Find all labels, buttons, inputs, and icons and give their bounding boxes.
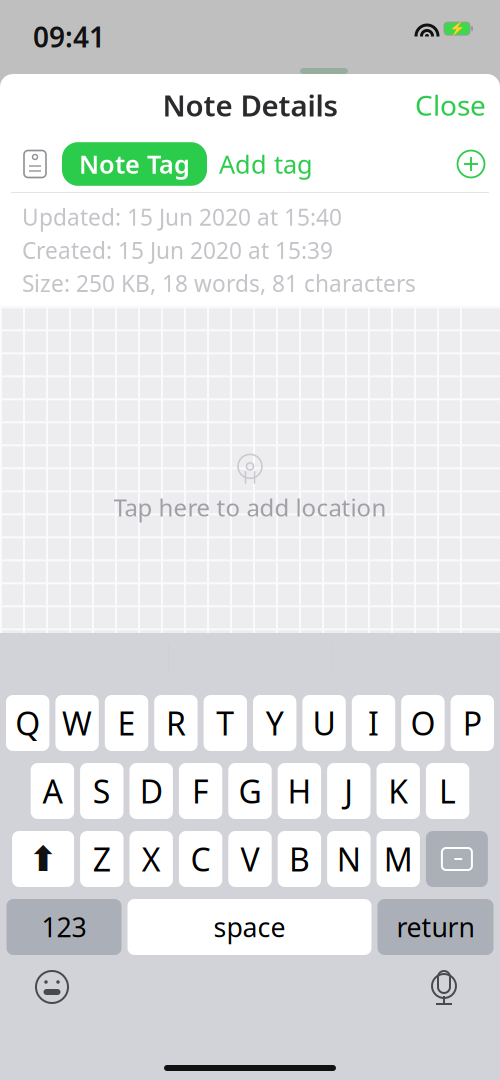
staticText: A (42, 770, 62, 812)
staticText: S (93, 770, 111, 812)
button[interactable]: 123 (6, 899, 121, 955)
button[interactable]: G (228, 763, 272, 819)
staticText: Add tag (219, 147, 313, 181)
staticText: Size: 250 KB, 18 words, 81 characters (22, 268, 416, 298)
staticText: R (166, 702, 186, 744)
button[interactable]: T (204, 695, 247, 751)
button[interactable]: I (352, 695, 395, 751)
button[interactable]: V (228, 831, 272, 887)
staticText: G (238, 770, 261, 812)
button[interactable]: H (278, 763, 321, 819)
staticText: Close (415, 86, 486, 124)
staticText: return (396, 909, 474, 945)
button[interactable]: O (401, 695, 445, 751)
staticText: ⚡ (448, 21, 465, 36)
staticText: U (313, 702, 336, 744)
staticText: V (240, 838, 259, 880)
staticText: ⬆ (29, 839, 58, 879)
button[interactable]: Close (401, 78, 500, 132)
button[interactable]: Emoji keyboard (30, 965, 74, 1009)
staticText: Note Tag (79, 147, 190, 181)
button[interactable]: Tap here to add location (0, 306, 500, 658)
staticText: space (213, 909, 285, 945)
staticText: Note Details (162, 85, 337, 124)
staticText: H (287, 770, 311, 812)
staticText: D (140, 770, 163, 812)
button[interactable]: Add tag (454, 147, 500, 181)
staticText: Z (93, 838, 111, 880)
button[interactable]: P (451, 695, 494, 751)
staticText: B (289, 838, 310, 880)
button[interactable]: F (179, 763, 222, 819)
button[interactable]: E (105, 695, 148, 751)
staticText: T (216, 702, 234, 744)
staticText: C (191, 838, 211, 880)
button[interactable]: J (327, 763, 370, 819)
staticText: O (410, 702, 435, 744)
button[interactable]: U (302, 695, 346, 751)
button[interactable]: K (376, 763, 420, 819)
staticText: 09:41 (33, 18, 105, 55)
staticText: 123 (41, 909, 86, 945)
staticText: P (463, 702, 482, 744)
button[interactable]: Delete (426, 831, 488, 887)
button[interactable]: Note Tag (62, 142, 207, 186)
button[interactable]: Q (6, 695, 49, 751)
staticText: Updated: 15 Jun 2020 at 15:40 (22, 202, 342, 232)
button[interactable]: M (376, 831, 420, 887)
staticText: F (192, 770, 209, 812)
button[interactable]: R (154, 695, 198, 751)
staticText: Y (266, 702, 284, 744)
button[interactable]: D (129, 763, 173, 819)
staticText: K (388, 770, 408, 812)
button[interactable]: return (377, 899, 493, 955)
button[interactable]: Y (253, 695, 296, 751)
button[interactable]: A (31, 763, 74, 819)
staticText: Tap here to add location (113, 491, 386, 523)
button[interactable]: Z (80, 831, 123, 887)
button[interactable]: space (127, 899, 371, 955)
staticText: X (142, 838, 161, 880)
button[interactable]: C (179, 831, 222, 887)
button[interactable]: S (80, 763, 123, 819)
button[interactable]: B (278, 831, 321, 887)
staticText: Created: 15 Jun 2020 at 15:39 (22, 235, 333, 265)
staticText: L (439, 770, 456, 812)
staticText: J (344, 770, 353, 812)
staticText: I (368, 702, 379, 744)
staticText: W (62, 702, 92, 744)
button[interactable]: W (55, 695, 99, 751)
button[interactable]: N (327, 831, 370, 887)
staticText: Q (15, 702, 40, 744)
staticText: N (337, 838, 361, 880)
staticText: E (117, 702, 135, 744)
button[interactable]: X (129, 831, 173, 887)
button[interactable]: Shift (12, 831, 74, 887)
button[interactable]: Dictation (422, 965, 466, 1009)
button[interactable]: L (426, 763, 469, 819)
button[interactable]: Add tag (211, 141, 321, 187)
staticText: M (384, 838, 413, 880)
